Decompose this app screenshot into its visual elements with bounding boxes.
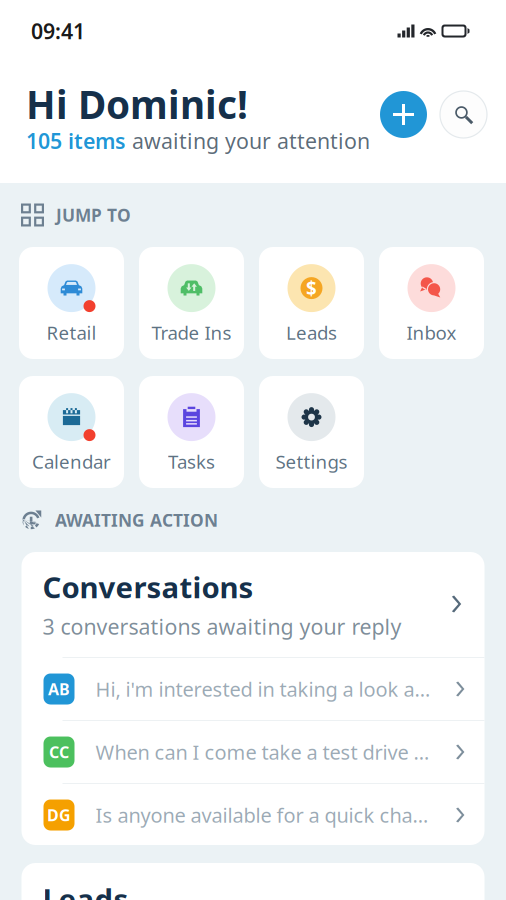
button[interactable]: Calendar xyxy=(19,376,124,488)
staticText: Conversations xyxy=(42,567,253,606)
button[interactable]: DG xyxy=(21,784,484,846)
staticText: Trade Ins xyxy=(151,320,231,345)
staticText: Inbox xyxy=(406,320,456,345)
button[interactable]: Leads xyxy=(21,863,484,900)
staticText: Retail xyxy=(46,320,96,345)
staticText: Leads xyxy=(42,879,128,900)
staticText: AB xyxy=(48,678,70,700)
staticText: DG xyxy=(47,804,71,826)
staticText: CC xyxy=(49,741,69,763)
button[interactable]: Retail xyxy=(19,247,124,359)
staticText: Hi Dominic! xyxy=(26,78,248,130)
staticText: Settings xyxy=(275,449,347,474)
staticText: JUMP TO xyxy=(56,203,131,226)
button[interactable]: Conversations xyxy=(21,551,484,657)
button[interactable]: AB xyxy=(21,658,484,720)
button[interactable]: CC xyxy=(21,721,484,783)
staticText: awaiting your attention xyxy=(126,127,370,155)
button[interactable]: Search xyxy=(440,91,487,138)
staticText: 105 items xyxy=(26,127,126,155)
button[interactable]: $ xyxy=(259,247,364,359)
button[interactable]: Inbox xyxy=(379,247,484,359)
staticText: 09:41 xyxy=(31,17,85,45)
staticText: Is anyone available for a quick chat on… xyxy=(95,802,431,828)
staticText: When can I come take a test drive of … xyxy=(95,739,431,765)
staticText: Leads xyxy=(286,320,337,345)
button[interactable]: Trade Ins xyxy=(139,247,244,359)
staticText: Hi, i'm interested in taking a look at t… xyxy=(95,676,431,702)
staticText: 3 conversations awaiting your reply xyxy=(42,612,401,641)
staticText: AWAITING ACTION xyxy=(55,508,218,531)
staticText: $ xyxy=(306,276,317,300)
button[interactable]: Tasks xyxy=(139,376,244,488)
button[interactable]: Add xyxy=(380,91,427,138)
staticText: Calendar xyxy=(32,449,111,474)
staticText: Tasks xyxy=(168,449,215,474)
button[interactable]: Settings xyxy=(259,376,364,488)
